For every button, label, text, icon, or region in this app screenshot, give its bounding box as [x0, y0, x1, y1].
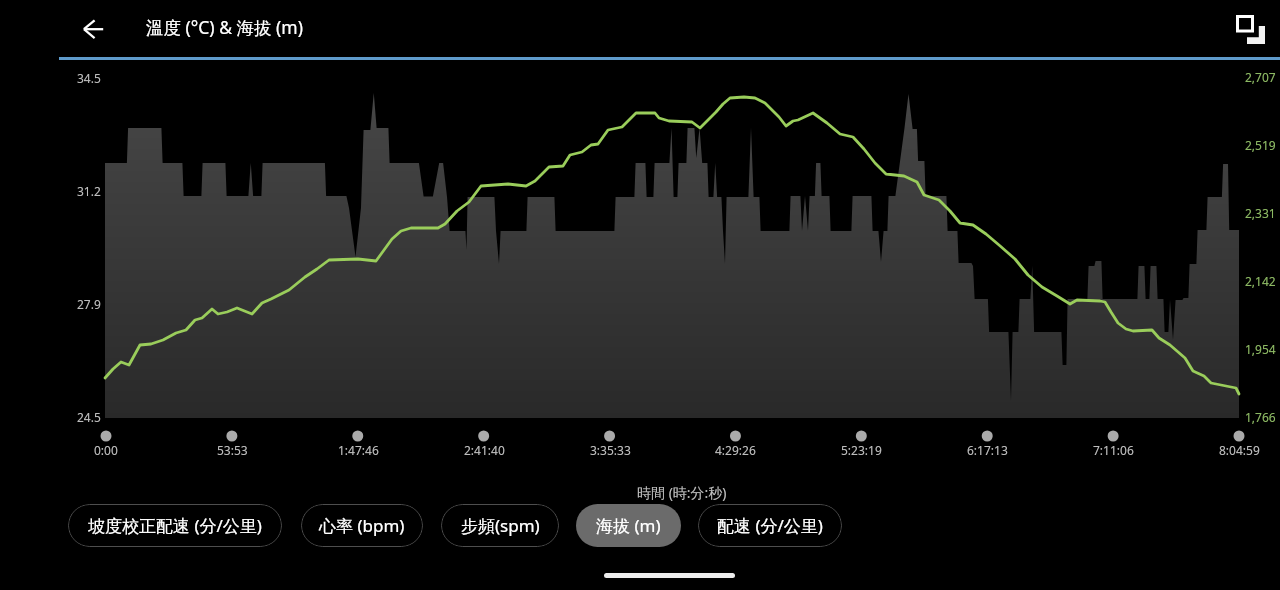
staticText: 海拔 (m): [596, 514, 661, 537]
staticText: 31.2: [77, 183, 101, 199]
staticText: 1,954: [1245, 341, 1276, 357]
staticText: 溫度 (°C) & 海拔 (m): [146, 15, 303, 39]
staticText: 4:29:26: [715, 442, 756, 458]
staticText: 時間 (時:分:秒): [637, 483, 727, 502]
staticText: 心率 (bpm): [319, 514, 405, 537]
staticText: 27.9: [77, 296, 101, 312]
staticText: 2,331: [1245, 205, 1276, 221]
staticText: 1:47:46: [338, 442, 379, 458]
staticText: 3:35:33: [590, 442, 631, 458]
button[interactable]: 配速 (分/公里): [698, 504, 842, 547]
staticText: 0:00: [94, 442, 118, 458]
staticText: 2,519: [1245, 137, 1276, 153]
staticText: 6:17:13: [967, 442, 1008, 458]
button[interactable]: Flip to front: [1236, 15, 1265, 44]
staticText: 7:11:06: [1093, 442, 1134, 458]
staticText: 坡度校正配速 (分/公里): [88, 514, 262, 537]
staticText: 53:53: [217, 442, 248, 458]
staticText: 2,142: [1245, 273, 1276, 289]
button[interactable]: Back: [74, 10, 113, 49]
button[interactable]: 步頻(spm): [441, 504, 559, 547]
button[interactable]: 海拔 (m): [576, 504, 681, 547]
staticText: 1,766: [1245, 409, 1276, 425]
staticText: 5:23:19: [841, 442, 882, 458]
staticText: 2:41:40: [464, 442, 505, 458]
staticText: 配速 (分/公里): [717, 514, 823, 537]
staticText: 8:04:59: [1219, 442, 1260, 458]
staticText: 2,707: [1245, 69, 1276, 85]
button[interactable]: 心率 (bpm): [301, 504, 423, 547]
button[interactable]: 坡度校正配速 (分/公里): [68, 504, 282, 547]
staticText: 步頻(spm): [461, 514, 540, 537]
staticText: 34.5: [77, 70, 101, 86]
staticText: 24.5: [77, 409, 101, 425]
